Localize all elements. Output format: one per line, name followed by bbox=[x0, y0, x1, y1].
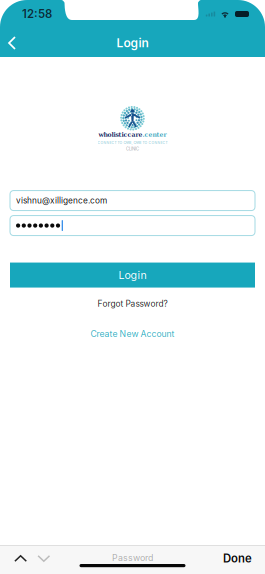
staticText: vishnu@xilligence.com bbox=[16, 196, 107, 206]
staticText: wholisticcare bbox=[98, 131, 142, 138]
staticText: Create New Account bbox=[90, 329, 174, 339]
staticText: Login bbox=[116, 36, 148, 50]
button[interactable]: Login bbox=[10, 263, 255, 288]
button[interactable]: Back bbox=[0, 31, 24, 55]
staticText: .center bbox=[142, 131, 166, 138]
staticText: 12:58 bbox=[22, 7, 52, 21]
staticText: Forgot Password? bbox=[97, 299, 167, 309]
staticText: Done bbox=[223, 552, 252, 565]
staticText: Password bbox=[112, 552, 153, 563]
staticText: CONNECT TO CARE, CARE TO CONNECT bbox=[97, 141, 167, 145]
button[interactable]: Next field bbox=[32, 550, 55, 567]
button[interactable]: Done bbox=[219, 549, 256, 568]
staticText: CLINIC bbox=[126, 146, 139, 152]
button[interactable]: Create New Account bbox=[78, 325, 186, 343]
button[interactable]: Forgot Password? bbox=[85, 295, 179, 313]
staticText: Login bbox=[118, 269, 146, 281]
button[interactable]: Previous field bbox=[9, 550, 32, 567]
